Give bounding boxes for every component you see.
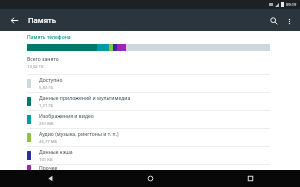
button[interactable]: Прочее [0, 165, 300, 170]
staticText: Память [28, 15, 56, 25]
staticText: Всего занято [27, 56, 59, 63]
staticText: Изображения и видео [39, 113, 94, 120]
button[interactable]: Доступно [0, 75, 300, 92]
button[interactable]: Home [100, 170, 200, 187]
staticText: Доступно [39, 77, 63, 84]
staticText: 5,83 ГБ [39, 85, 54, 91]
staticText: 45,77 МБ [39, 139, 58, 145]
button[interactable]: Search [266, 13, 281, 28]
staticText: Аудио (музыка, рингтоны и т. п.) [39, 131, 119, 138]
staticText: Память телефона [27, 34, 71, 41]
staticText: 251 МБ [39, 121, 54, 127]
staticText: Прочее [39, 165, 58, 170]
button[interactable]: Recent apps [200, 170, 300, 187]
button[interactable]: Back [0, 170, 100, 187]
staticText: 09:19 [286, 2, 297, 7]
button[interactable]: Данные кэша [0, 147, 300, 164]
button[interactable]: Изображения и видео [0, 111, 300, 128]
button[interactable]: Аудио (музыка, рингтоны и т. п.) [0, 129, 300, 146]
button[interactable]: Данные приложений и мультимедиа [0, 93, 300, 110]
staticText: Данные приложений и мультимедиа [39, 95, 131, 102]
button[interactable]: More options [282, 14, 296, 28]
button[interactable]: Back [6, 12, 22, 28]
staticText: 101 КБ [39, 157, 53, 163]
staticText: Данные кэша [39, 149, 73, 156]
staticText: 13,02 ГБ [27, 64, 44, 70]
staticText: 1,21 ГБ [39, 103, 54, 109]
